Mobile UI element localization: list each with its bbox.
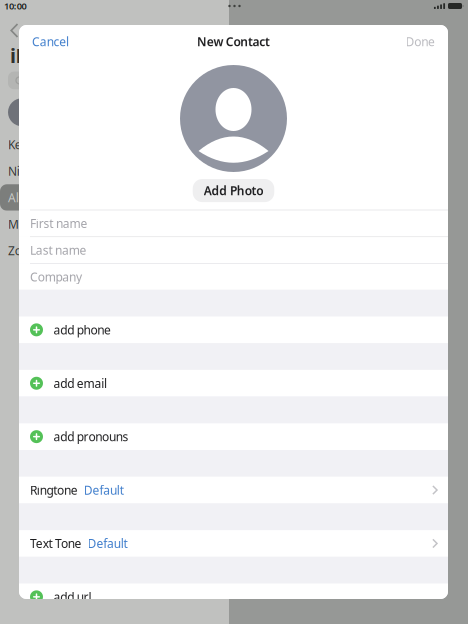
staticText: Zoe [8, 242, 29, 258]
staticText: add pronouns [53, 429, 128, 445]
button[interactable]: Text Tone [19, 530, 448, 557]
staticText: iPhone [10, 42, 77, 69]
staticText: Default [88, 535, 127, 551]
button[interactable]: Cancel [32, 33, 69, 49]
staticText: add url [53, 589, 91, 605]
staticText: Add Photo [204, 183, 263, 198]
staticText: Default [84, 482, 124, 498]
staticText: Kevin [8, 136, 37, 152]
button[interactable]: add email [19, 370, 448, 397]
button[interactable]: add pronouns [19, 423, 448, 450]
staticText: Cancel [32, 33, 69, 49]
staticText: Alex [8, 189, 31, 205]
staticText: Maya [8, 216, 38, 232]
staticText: 10:00 [4, 0, 27, 12]
staticText: Done [405, 33, 435, 49]
staticText: Nina [8, 163, 33, 179]
staticText: Company [30, 269, 82, 285]
button[interactable]: Ringtone [19, 477, 448, 503]
staticText: Text Tone [30, 535, 82, 551]
staticText: add phone [53, 322, 111, 338]
button[interactable]: add phone [19, 316, 448, 343]
staticText: add email [53, 375, 107, 391]
staticText: New Contact [197, 33, 270, 49]
staticText: Last name [30, 242, 87, 258]
button[interactable]: add url [19, 583, 448, 610]
staticText: First name [30, 215, 87, 231]
button[interactable]: Add Photo [193, 179, 274, 202]
button[interactable]: Done [405, 33, 435, 49]
staticText: Ringtone [30, 482, 78, 498]
